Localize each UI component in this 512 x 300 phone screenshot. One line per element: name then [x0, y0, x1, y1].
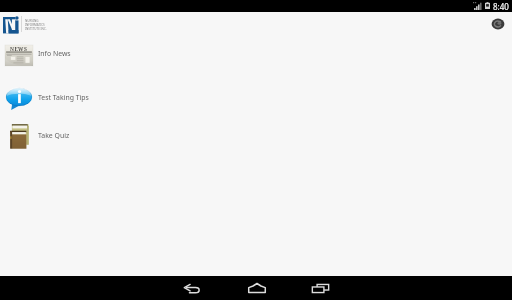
- button[interactable]: NEWS: [0, 34, 512, 77]
- staticText: 8:40: [493, 1, 509, 12]
- button[interactable]: Back: [180, 276, 204, 300]
- staticText: INFORMATICS: [25, 23, 45, 27]
- staticText: INSTITUTE INC.: [25, 27, 47, 31]
- staticText: Info News: [38, 49, 71, 58]
- staticText: Take Quiz: [38, 131, 70, 140]
- button[interactable]: Call us: [491, 18, 505, 30]
- button[interactable]: Test Taking Tips: [0, 77, 512, 121]
- button[interactable]: Recent apps: [308, 276, 332, 300]
- staticText: NURSING: [25, 19, 39, 23]
- staticText: Test Taking Tips: [38, 93, 89, 102]
- button[interactable]: Home: [245, 276, 269, 300]
- button[interactable]: Take Quiz: [0, 119, 512, 153]
- staticText: NEWS: [10, 46, 28, 53]
